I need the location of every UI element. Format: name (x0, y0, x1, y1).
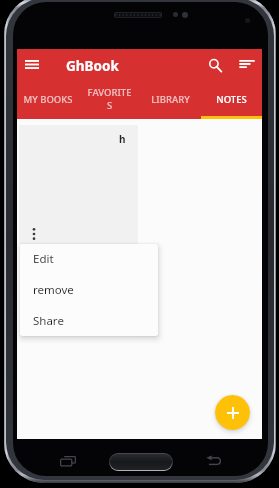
button[interactable]: Recent apps (60, 456, 76, 466)
button[interactable]: remove (20, 274, 158, 305)
button[interactable]: Search (202, 52, 228, 78)
staticText: h (119, 132, 126, 146)
button[interactable]: More options (27, 227, 41, 241)
staticText: FAVORITES (85, 86, 134, 112)
button[interactable]: NOTES (201, 83, 262, 119)
button[interactable]: Share (20, 305, 158, 336)
button[interactable]: Add (215, 395, 250, 430)
button[interactable]: MY BOOKS (17, 83, 79, 119)
staticText: Share (33, 313, 64, 329)
staticText: MY BOOKS (23, 93, 73, 106)
button[interactable]: Sort (234, 51, 260, 77)
button[interactable]: Menu (20, 52, 44, 76)
button[interactable]: h (19, 125, 138, 244)
staticText: Edit (33, 251, 54, 267)
staticText: LIBRARY (151, 93, 190, 106)
button[interactable]: Back (206, 456, 221, 466)
button[interactable]: Edit (20, 244, 158, 274)
staticText: remove (33, 282, 74, 298)
button[interactable]: Home (110, 454, 172, 470)
staticText: GhBook (66, 57, 119, 75)
staticText: NOTES (216, 93, 247, 106)
button[interactable]: FAVORITES (79, 83, 140, 119)
button[interactable]: LIBRARY (140, 83, 201, 119)
